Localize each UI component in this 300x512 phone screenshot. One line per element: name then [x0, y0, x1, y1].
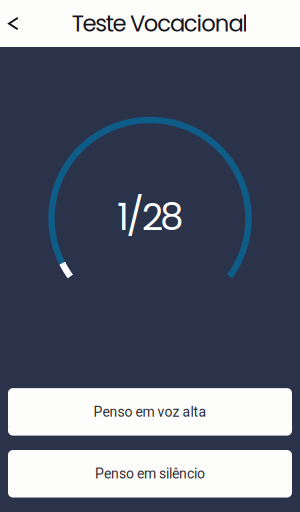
staticText: 1/28	[117, 191, 184, 243]
staticText: Penso em voz alta	[93, 404, 206, 420]
button[interactable]: Penso em voz alta	[8, 388, 292, 436]
button[interactable]: Back	[0, 0, 34, 47]
staticText: Teste Vocacional	[72, 8, 248, 39]
button[interactable]: Penso em silêncio	[8, 450, 292, 497]
staticText: Penso em silêncio	[95, 465, 205, 482]
